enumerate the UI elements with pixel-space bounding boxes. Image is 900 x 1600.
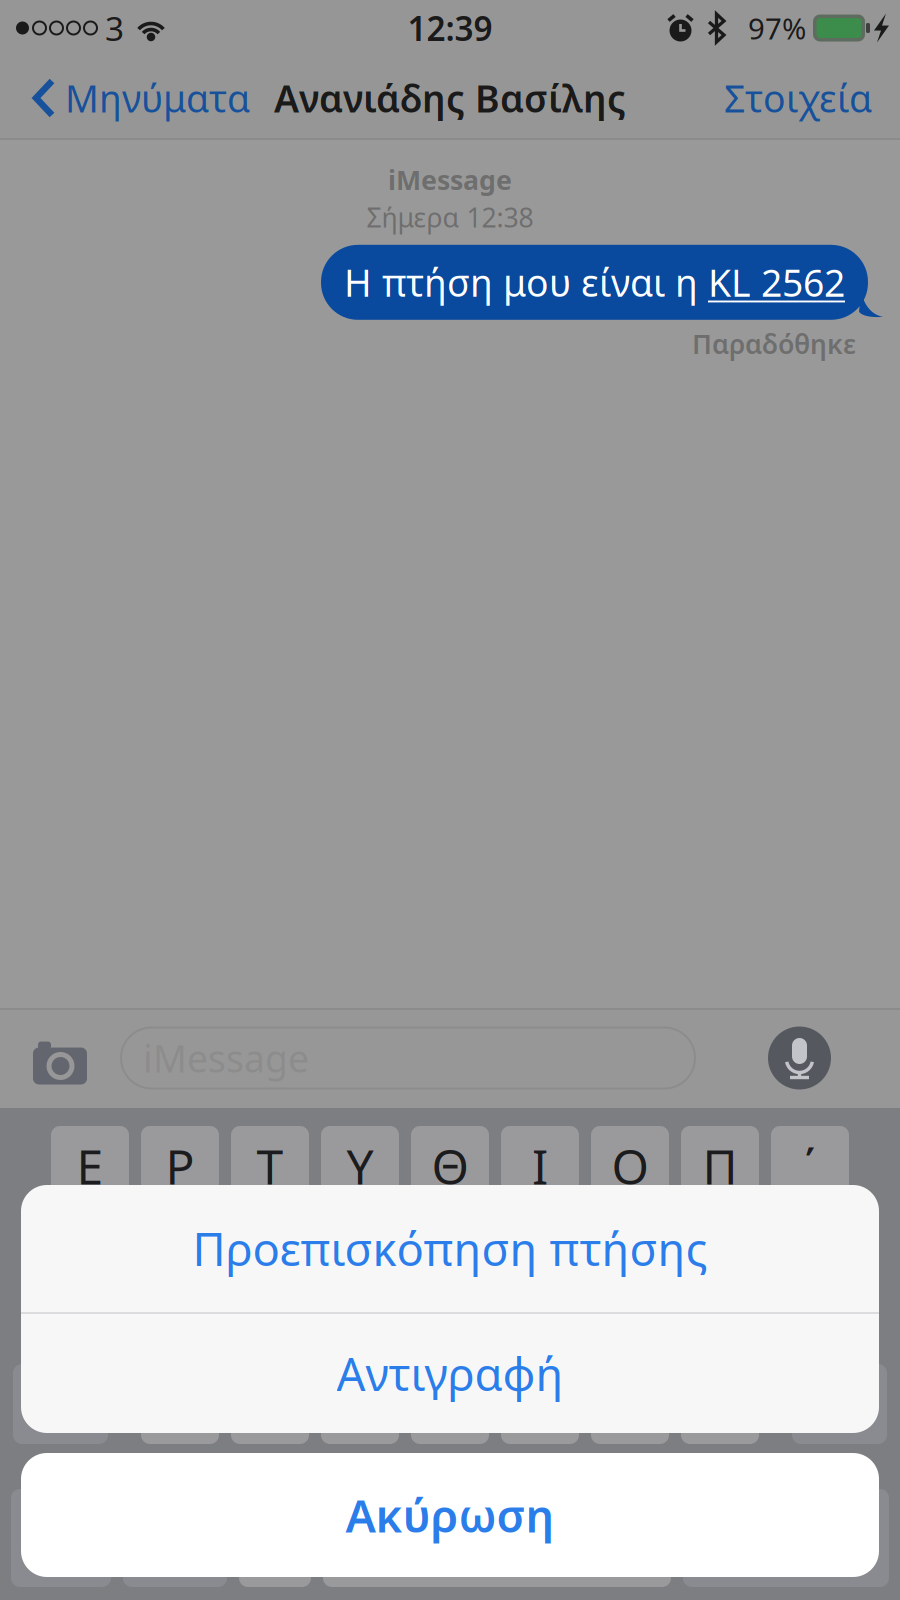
staticText: Ψ xyxy=(340,1372,379,1436)
staticText: Γ xyxy=(438,1253,462,1317)
staticText: Σ xyxy=(166,1253,193,1317)
staticText: Η xyxy=(522,1253,558,1317)
button[interactable]: Προεπισκόπηση πτήσης xyxy=(21,1185,879,1312)
staticText: iMessage xyxy=(143,1033,309,1083)
staticText: Μ xyxy=(698,1372,742,1436)
staticText: Η πτήση μου είναι η KL 2562 xyxy=(344,257,845,307)
staticText: ΄ xyxy=(804,1134,815,1198)
staticText: Ξ xyxy=(615,1253,645,1317)
staticText: iMessage xyxy=(388,162,512,197)
staticText: Θ xyxy=(431,1134,468,1198)
staticText: Προεπισκόπηση πτήσης xyxy=(192,1218,707,1279)
button[interactable]: Στοιχεία xyxy=(0,73,900,123)
button[interactable]: Αντιγραφή xyxy=(21,1314,879,1433)
staticText: Τ xyxy=(256,1134,283,1198)
button[interactable]: Ακύρωση xyxy=(21,1453,879,1577)
staticText: Στοιχεία xyxy=(724,73,872,123)
staticText: Ε xyxy=(76,1134,103,1198)
staticText: Χ xyxy=(256,1372,284,1436)
staticText: Μηνύματα xyxy=(65,73,250,123)
staticText: Παραδόθηκε xyxy=(692,326,856,361)
button[interactable]: Dictate xyxy=(768,1026,831,1089)
staticText: Δ xyxy=(254,1253,285,1317)
staticText: 3 xyxy=(105,6,124,50)
staticText: Ακύρωση xyxy=(345,1485,554,1545)
staticText: Υ xyxy=(346,1134,373,1198)
staticText: Α xyxy=(74,1253,105,1317)
staticText: 123 xyxy=(20,1506,101,1570)
staticText: Ω xyxy=(433,1372,467,1436)
staticText: Κ xyxy=(705,1253,735,1317)
button[interactable]: Μηνύματα xyxy=(0,73,250,123)
staticText: Λ xyxy=(795,1253,824,1317)
button[interactable]: Camera xyxy=(33,1035,87,1080)
staticText: Ο xyxy=(611,1134,648,1198)
staticText: Αντιγραφή xyxy=(336,1343,563,1404)
staticText: Ι xyxy=(532,1134,548,1198)
staticText: 97% xyxy=(748,8,806,47)
staticText: Ζ xyxy=(166,1372,193,1436)
staticText: Β xyxy=(524,1372,555,1436)
staticText: Π xyxy=(702,1134,737,1198)
staticText: Σήμερα 12:38 xyxy=(366,199,533,235)
staticText: Ανανιάδης Βασίλης xyxy=(274,73,626,123)
staticText: Ρ xyxy=(165,1134,194,1198)
staticText: Ν xyxy=(612,1372,648,1436)
staticText: Φ xyxy=(340,1253,380,1317)
staticText: 12:39 xyxy=(407,6,492,50)
